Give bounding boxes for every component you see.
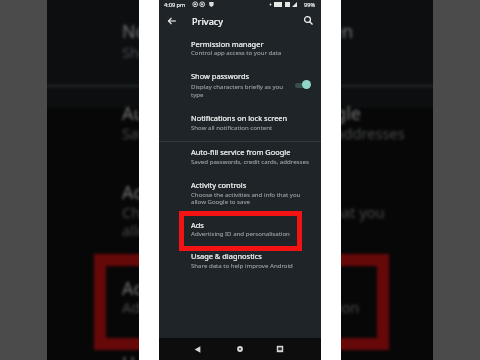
staticText: Show passwords bbox=[191, 71, 250, 81]
staticText: Activity controls bbox=[122, 180, 255, 204]
button[interactable]: Back bbox=[185, 340, 209, 358]
staticText: Auto-fill service from Google bbox=[122, 101, 361, 125]
staticText: Auto-fill service from Google bbox=[191, 147, 291, 157]
staticText: Privacy bbox=[192, 15, 224, 27]
staticText: 99% bbox=[304, 1, 316, 9]
staticText: allow Google to save bbox=[122, 220, 264, 240]
staticText: Show all notification content bbox=[191, 123, 273, 131]
button[interactable]: Show passwords bbox=[159, 67, 321, 101]
staticText: Ads bbox=[191, 220, 204, 230]
button[interactable]: Activity controls bbox=[159, 176, 321, 209]
staticText: Advertising ID and personalisation bbox=[122, 297, 360, 317]
button[interactable]: Auto-fill service from Google bbox=[159, 143, 321, 168]
staticText: Advertising ID and personalisation bbox=[191, 229, 290, 237]
button[interactable]: Show passwords toggle bbox=[290, 76, 314, 94]
staticText: Ads bbox=[122, 276, 153, 300]
staticText: Display characters briefly as you bbox=[191, 82, 283, 90]
staticText: 4:09 pm bbox=[164, 1, 186, 9]
staticText: Choose the activities and info that you bbox=[191, 190, 301, 198]
button[interactable]: Usage & diagnostics bbox=[159, 247, 321, 272]
button[interactable]: Recent apps bbox=[268, 340, 292, 358]
staticText: Usage & diagnostics bbox=[191, 251, 262, 261]
staticText: Share data to help improve Android bbox=[191, 261, 293, 269]
staticText: Activity controls bbox=[191, 180, 247, 190]
staticText: Control app access to your data bbox=[191, 48, 282, 56]
staticText: Notifications on lock screen bbox=[191, 113, 288, 123]
staticText: Permission manager bbox=[191, 39, 264, 49]
staticText: Notifications on lock screen bbox=[122, 19, 354, 43]
button[interactable]: Back bbox=[161, 10, 182, 31]
staticText: type bbox=[191, 90, 204, 98]
staticText: allow Google to save bbox=[191, 197, 250, 205]
staticText: Usage & diagnostics bbox=[122, 351, 293, 360]
button[interactable]: Ads bbox=[159, 216, 321, 241]
staticText: Choose the activities and info that you bbox=[122, 202, 385, 222]
staticText: Saved passwords, credit cards, addresses bbox=[122, 123, 405, 143]
button[interactable]: Search bbox=[298, 10, 319, 31]
staticText: Saved passwords, credit cards, addresses bbox=[191, 157, 309, 165]
button[interactable]: Notifications on lock screen bbox=[159, 109, 321, 134]
staticText: Show all notification content bbox=[122, 42, 317, 62]
button[interactable]: Home bbox=[228, 340, 252, 358]
button[interactable]: Permission manager bbox=[159, 35, 321, 60]
